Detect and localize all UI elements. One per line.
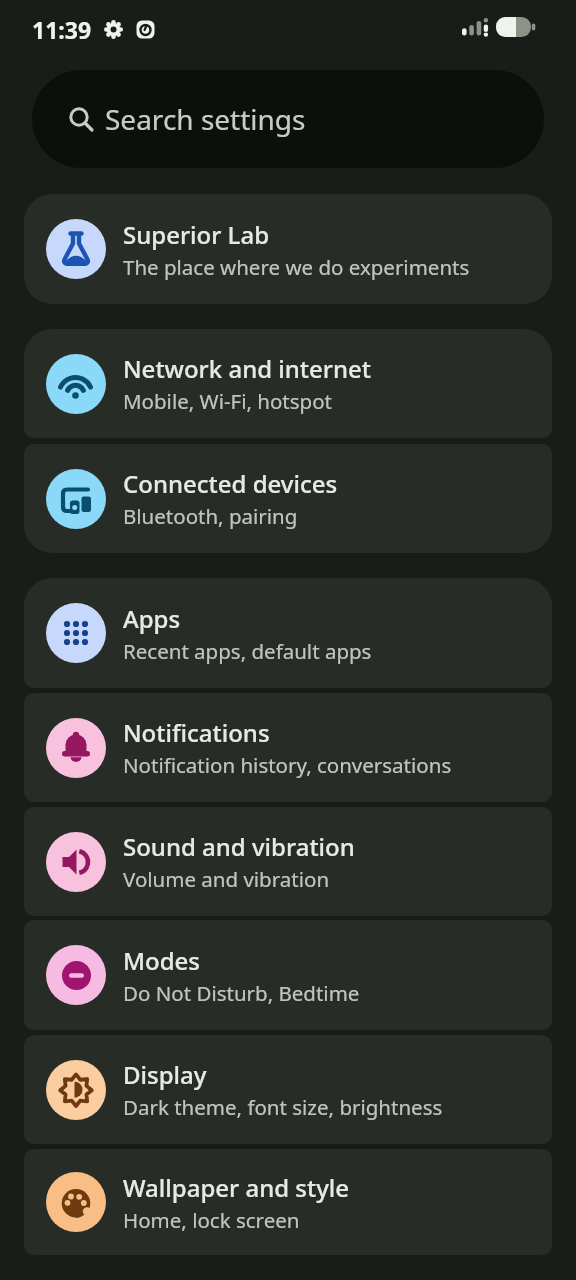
staticText: Bluetooth, pairing: [123, 502, 298, 530]
staticText: Recent apps, default apps: [123, 637, 372, 665]
button[interactable]: Connected devices: [24, 444, 552, 553]
button[interactable]: Sound and vibration: [24, 807, 552, 916]
staticText: Modes: [123, 944, 201, 977]
staticText: Display: [123, 1058, 207, 1091]
button[interactable]: Wallpaper and style: [24, 1149, 552, 1255]
staticText: Apps: [123, 602, 181, 635]
button[interactable]: Notifications: [24, 693, 552, 802]
button[interactable]: Network and internet: [24, 329, 552, 438]
button[interactable]: Superior Lab: [24, 194, 552, 304]
button[interactable]: Apps: [24, 578, 552, 688]
staticText: Mobile, Wi-Fi, hotspot: [123, 387, 332, 415]
staticText: Network and internet: [123, 352, 371, 385]
staticText: Wallpaper and style: [123, 1171, 350, 1204]
staticText: Dark theme, font size, brightness: [123, 1093, 443, 1121]
button[interactable]: Modes: [24, 920, 552, 1030]
staticText: Sound and vibration: [123, 830, 355, 863]
staticText: Notifications: [123, 716, 270, 749]
staticText: Notification history, conversations: [123, 751, 452, 779]
staticText: Home, lock screen: [123, 1206, 300, 1234]
staticText: Do Not Disturb, Bedtime: [123, 979, 360, 1007]
staticText: Volume and vibration: [123, 865, 330, 893]
staticText: Superior Lab: [123, 218, 270, 251]
staticText: The place where we do experiments: [123, 253, 470, 281]
button[interactable]: Display: [24, 1035, 552, 1144]
staticText: Search settings: [105, 100, 306, 138]
staticText: 11:39: [32, 14, 92, 44]
staticText: Connected devices: [123, 467, 338, 500]
button[interactable]: Search settings: [32, 70, 544, 168]
